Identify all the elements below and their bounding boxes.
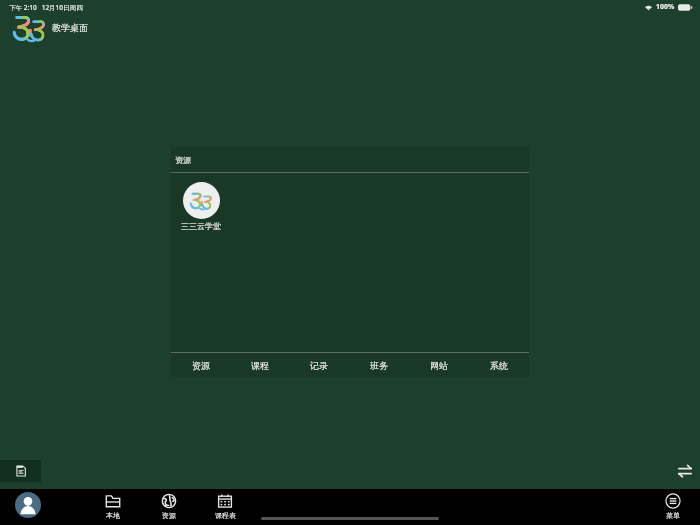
button[interactable]: 本地 bbox=[96, 493, 130, 523]
staticText: 课程表 bbox=[215, 511, 236, 520]
button[interactable]: 资源 bbox=[171, 147, 529, 172]
staticText: 100% bbox=[656, 2, 675, 12]
button[interactable]: 班务 bbox=[349, 353, 409, 377]
button[interactable]: 系统 bbox=[469, 353, 529, 377]
button[interactable]: 菜单 bbox=[656, 493, 690, 523]
staticText: 三三云学堂 bbox=[181, 221, 221, 231]
button[interactable]: 课程表 bbox=[208, 493, 242, 523]
other: Battery 100 percent bbox=[678, 3, 692, 12]
staticText: 资源 bbox=[175, 155, 191, 165]
staticText: 记录 bbox=[310, 360, 328, 371]
staticText: 教学桌面 bbox=[52, 22, 88, 33]
button[interactable]: 三三云学堂 bbox=[175, 182, 227, 231]
staticText: 课程 bbox=[251, 360, 269, 371]
staticText: 资源 bbox=[192, 360, 210, 371]
button[interactable]: 资源 bbox=[171, 353, 230, 377]
button[interactable]: 网站 bbox=[409, 353, 469, 377]
staticText: 系统 bbox=[490, 360, 508, 371]
staticText: 班务 bbox=[370, 360, 388, 371]
button[interactable]: 课程 bbox=[230, 353, 289, 377]
staticText: 下午 2:10 12月10日周四 bbox=[9, 3, 83, 12]
button[interactable]: 资源 bbox=[152, 493, 186, 523]
other: Wi-Fi bbox=[644, 3, 653, 11]
staticText: 资源 bbox=[162, 511, 176, 520]
staticText: 菜单 bbox=[666, 511, 680, 520]
button[interactable]: Profile bbox=[15, 492, 41, 518]
staticText: 本地 bbox=[106, 511, 120, 520]
staticText: 网站 bbox=[430, 360, 448, 371]
button[interactable]: Notes bbox=[0, 460, 41, 482]
button[interactable]: 记录 bbox=[289, 353, 349, 377]
button[interactable]: Switch bbox=[678, 464, 692, 478]
